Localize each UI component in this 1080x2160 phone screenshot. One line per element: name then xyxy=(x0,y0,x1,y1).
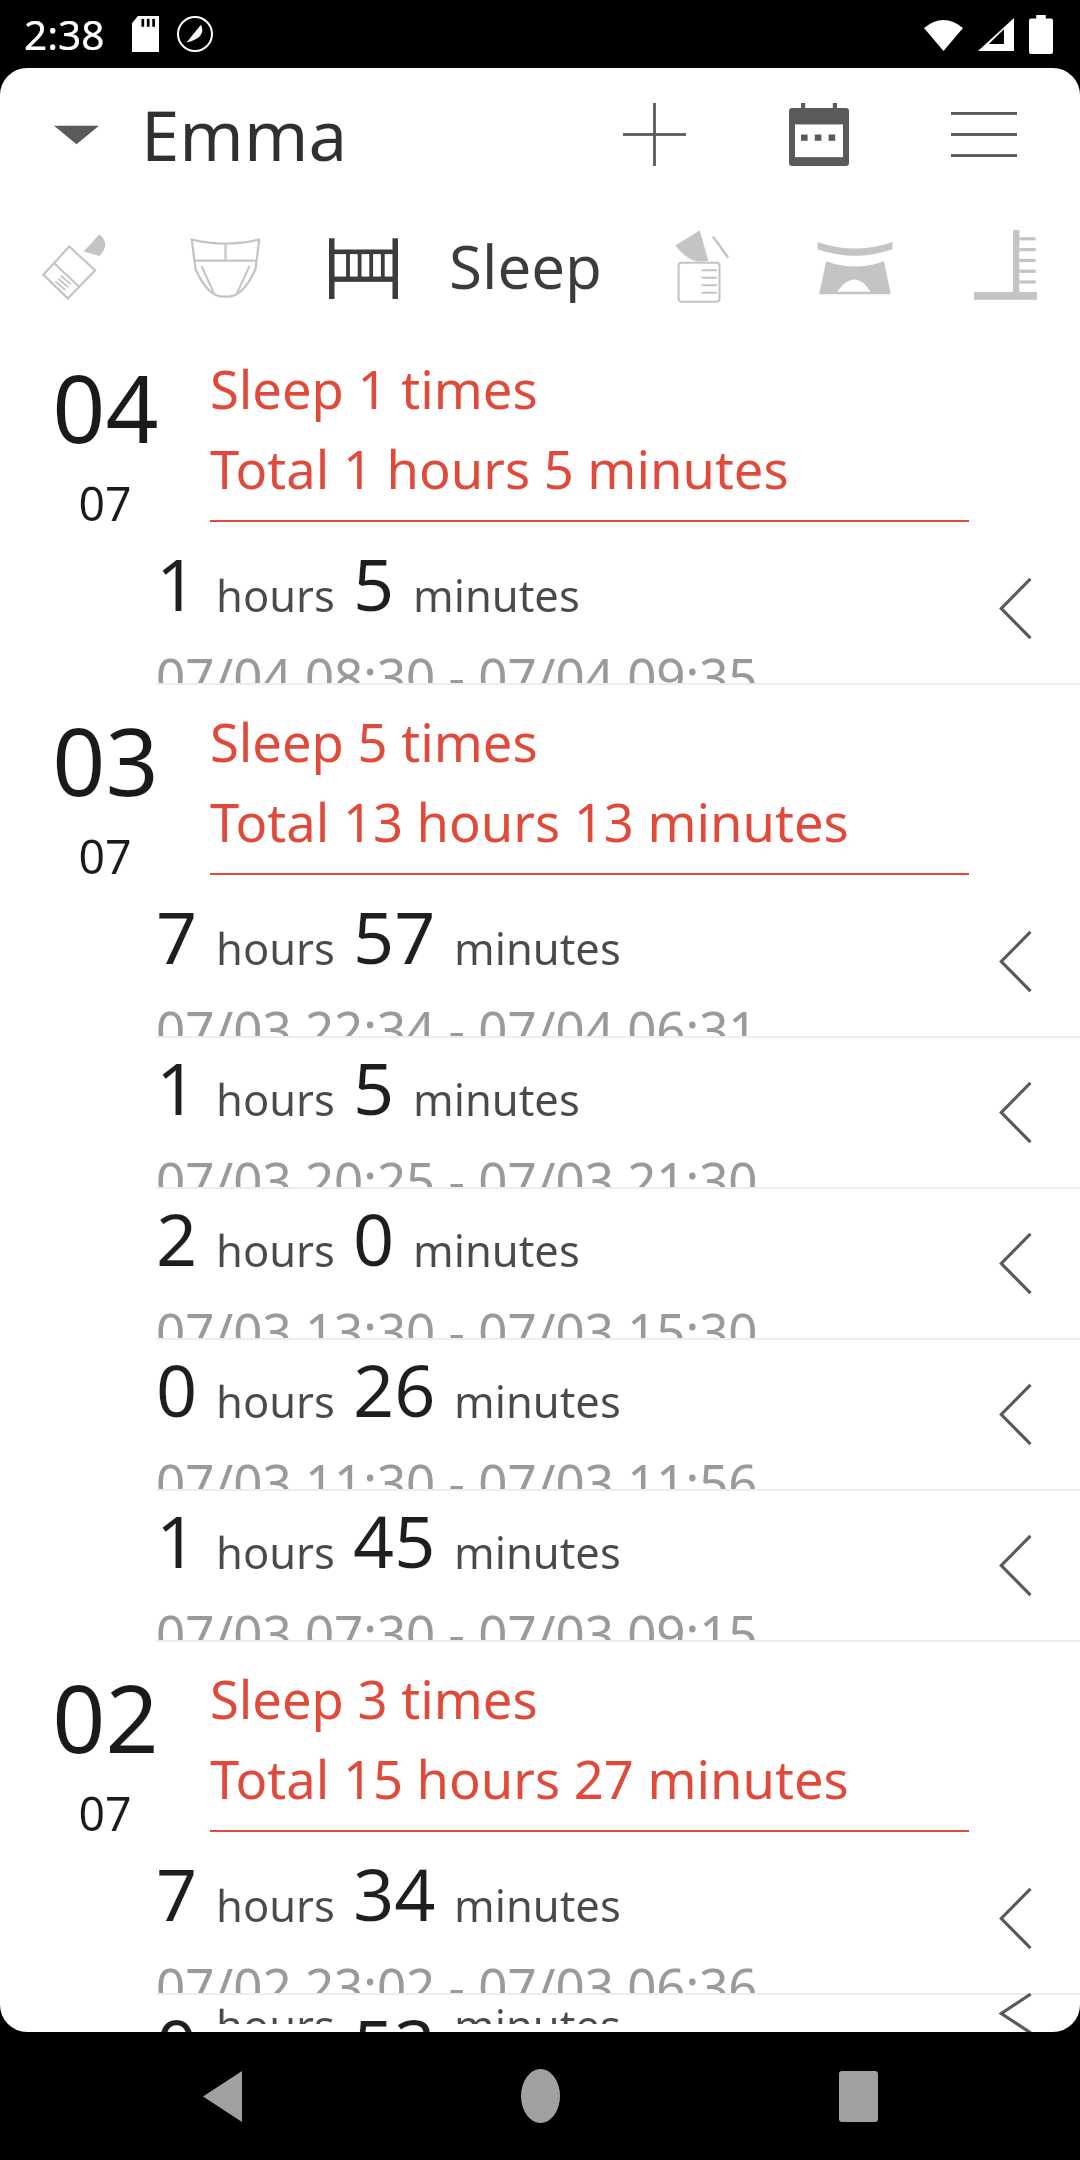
staticText: 7 xyxy=(156,1844,198,1942)
staticText: Sleep 3 times xyxy=(210,1663,538,1735)
staticText: 0 xyxy=(156,1995,198,2032)
staticText: 07/03 07:30 - 07/03 09:15 xyxy=(156,1598,758,1640)
staticText: 1 xyxy=(156,534,198,632)
staticText: minutes xyxy=(454,1995,621,2024)
staticText: minutes xyxy=(413,1069,580,1128)
button[interactable]: 03 xyxy=(0,685,1080,887)
staticText: 07 xyxy=(78,471,132,534)
button[interactable]: 1 xyxy=(0,534,1080,685)
staticText: minutes xyxy=(454,918,621,977)
staticText: 57 xyxy=(353,887,436,985)
staticText: 53 xyxy=(353,1995,436,2032)
staticText: 2 xyxy=(156,1189,198,1287)
button[interactable]: 0 xyxy=(0,1995,1080,2032)
staticText: 07 xyxy=(78,824,132,887)
staticText: Total 1 hours 5 minutes xyxy=(210,433,789,505)
button[interactable]: Recents xyxy=(762,2033,954,2159)
other: Details xyxy=(948,1491,1080,1640)
staticText: 5 xyxy=(353,534,395,632)
button[interactable]: 2 xyxy=(0,1189,1080,1340)
staticText: 1 xyxy=(156,1491,198,1589)
other: Select baby xyxy=(54,121,99,148)
staticText: Sleep xyxy=(449,225,602,307)
staticText: 0 xyxy=(156,1340,198,1438)
staticText: minutes xyxy=(454,1371,621,1430)
staticText: minutes xyxy=(413,565,580,624)
staticText: 07/03 13:30 - 07/03 15:30 xyxy=(156,1296,758,1338)
staticText: 5 xyxy=(353,1038,395,1136)
button[interactable]: 1 xyxy=(0,1491,1080,1642)
other: Details xyxy=(948,887,1080,1036)
staticText: 07/03 11:30 - 07/03 11:56 xyxy=(156,1447,758,1489)
staticText: hours xyxy=(216,1995,335,2024)
staticText: 7 xyxy=(156,887,198,985)
button[interactable]: Add xyxy=(588,68,720,200)
staticText: Total 15 hours 27 minutes xyxy=(210,1743,849,1815)
button[interactable]: 1 xyxy=(0,1038,1080,1189)
staticText: minutes xyxy=(454,1875,621,1934)
button[interactable]: 04 xyxy=(0,332,1080,534)
staticText: 07/03 20:25 - 07/03 21:30 xyxy=(156,1145,758,1187)
button[interactable]: 7 xyxy=(0,1844,1080,1995)
staticText: 26 xyxy=(353,1340,436,1438)
staticText: 03 xyxy=(52,697,159,824)
staticText: 1 xyxy=(156,1038,198,1136)
other: Details xyxy=(948,1340,1080,1489)
staticText: 02 xyxy=(52,1654,159,1781)
button[interactable]: Sleep xyxy=(300,200,630,332)
button[interactable]: Home xyxy=(444,2033,636,2159)
other: Details xyxy=(948,1189,1080,1338)
staticText: 07/03 22:34 - 07/04 06:31 xyxy=(156,994,758,1036)
staticText: minutes xyxy=(413,1220,580,1279)
staticText: 0 xyxy=(353,1189,395,1287)
staticText: 45 xyxy=(353,1491,436,1589)
other: Details xyxy=(948,534,1080,683)
staticText: 07/02 23:02 - 07/03 06:36 xyxy=(156,1951,758,1993)
button[interactable]: Pump xyxy=(630,200,780,332)
button[interactable]: Height xyxy=(930,200,1080,332)
staticText: hours xyxy=(216,1522,335,1581)
button[interactable]: Diaper xyxy=(150,200,300,332)
staticText: minutes xyxy=(454,1522,621,1581)
button[interactable]: 0 xyxy=(0,1340,1080,1491)
staticText: 07 xyxy=(78,1781,132,1844)
staticText: hours xyxy=(216,1069,335,1128)
other: Details xyxy=(948,1995,1080,2032)
staticText: 34 xyxy=(353,1844,436,1942)
button[interactable]: Back xyxy=(126,2033,318,2159)
button[interactable]: Menu xyxy=(918,68,1050,200)
staticText: Emma xyxy=(141,87,348,181)
staticText: hours xyxy=(216,1220,335,1279)
button[interactable]: Weight xyxy=(780,200,930,332)
other: Details xyxy=(948,1038,1080,1187)
staticText: Sleep 5 times xyxy=(210,706,538,778)
staticText: Sleep 1 times xyxy=(210,353,538,425)
staticText: hours xyxy=(216,1875,335,1934)
button[interactable]: Calendar xyxy=(753,68,885,200)
button[interactable]: Bottle xyxy=(0,200,150,332)
staticText: 04 xyxy=(52,344,159,471)
staticText: hours xyxy=(216,565,335,624)
staticText: 2:38 xyxy=(24,7,105,62)
staticText: 07/04 08:30 - 07/04 09:35 xyxy=(156,641,758,683)
button[interactable]: Select baby xyxy=(42,69,360,199)
other: Details xyxy=(948,1844,1080,1993)
button[interactable]: 7 xyxy=(0,887,1080,1038)
button[interactable]: 02 xyxy=(0,1642,1080,1844)
staticText: hours xyxy=(216,918,335,977)
staticText: Total 13 hours 13 minutes xyxy=(210,786,849,858)
staticText: hours xyxy=(216,1371,335,1430)
